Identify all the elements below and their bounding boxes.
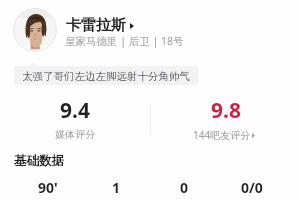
button[interactable]: 0/0 — [218, 178, 286, 197]
staticText: 媒体评分 — [55, 128, 95, 141]
button[interactable]: 卡雷拉斯 — [66, 16, 134, 35]
staticText: 太强了哥们左边左脚远射十分角帅气 — [22, 70, 190, 83]
staticText: 卡雷拉斯 — [66, 16, 126, 35]
button[interactable]: 0 — [150, 178, 218, 197]
button[interactable]: 9.8 — [161, 96, 291, 142]
button[interactable]: Player photo — [13, 8, 57, 52]
staticText: 皇家马德里 | 后卫 | 18号 — [65, 34, 184, 48]
staticText: 144吧友评分 — [193, 128, 251, 142]
staticText: 90' — [38, 178, 58, 197]
staticText: 1 — [112, 178, 121, 197]
staticText: 9.8 — [211, 96, 241, 125]
button[interactable]: 90' — [13, 178, 82, 197]
button[interactable]: 9.4 — [10, 96, 140, 141]
staticText: 0/0 — [241, 178, 263, 197]
staticText: 9.4 — [60, 96, 90, 125]
button[interactable]: 太强了哥们左边左脚远射十分角帅气 — [14, 66, 198, 85]
staticText: 基础数据 — [14, 153, 64, 169]
staticText: 0 — [180, 178, 189, 197]
button[interactable]: 1 — [82, 178, 150, 197]
